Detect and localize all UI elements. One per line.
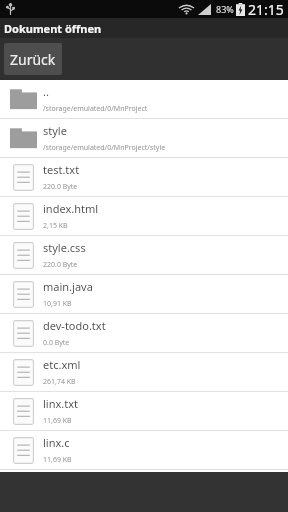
staticText: /storage/emulated/0/MnProject: [43, 104, 148, 114]
button[interactable]: etc.xml: [0, 353, 288, 392]
button[interactable]: Zurück: [4, 43, 62, 75]
button[interactable]: test.txt: [0, 158, 288, 197]
button[interactable]: style.css: [0, 236, 288, 275]
button[interactable]: ..: [0, 80, 288, 119]
staticText: etc.xml: [43, 357, 81, 372]
staticText: 83%: [216, 3, 234, 15]
staticText: 11,69 KB: [43, 416, 72, 426]
staticText: dev-todo.txt: [43, 318, 106, 333]
staticText: 220.0 Byte: [43, 182, 78, 192]
staticText: Zurück: [10, 50, 56, 69]
button[interactable]: main.java: [0, 275, 288, 314]
staticText: index.html: [43, 201, 99, 216]
staticText: Dokument öffnen: [4, 21, 102, 36]
staticText: /storage/emulated/0/MnProject/style: [43, 143, 166, 153]
staticText: 220.0 Byte: [43, 260, 78, 270]
staticText: 21:15: [248, 0, 284, 18]
staticText: 261,74 KB: [43, 377, 76, 387]
staticText: 0.0 Byte: [43, 338, 70, 348]
button[interactable]: index.html: [0, 197, 288, 236]
staticText: 10,91 KB: [43, 299, 72, 309]
button[interactable]: linx.txt: [0, 392, 288, 431]
button[interactable]: linx.c: [0, 431, 288, 470]
staticText: style.css: [43, 240, 86, 255]
staticText: test.txt: [43, 162, 80, 177]
staticText: style: [43, 123, 67, 138]
staticText: linx.c: [43, 435, 70, 450]
staticText: 11,69 KB: [43, 455, 72, 465]
button[interactable]: dev-todo.txt: [0, 314, 288, 353]
staticText: linx.txt: [43, 396, 79, 411]
staticText: main.java: [43, 279, 93, 294]
staticText: 2,15 KB: [43, 221, 68, 231]
button[interactable]: style: [0, 119, 288, 158]
staticText: ..: [43, 84, 49, 99]
